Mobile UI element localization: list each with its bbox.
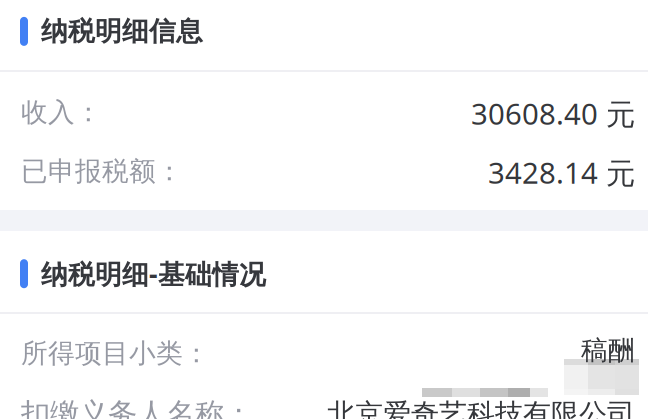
button[interactable]: 纳税明细信息 [0, 15, 648, 70]
staticText: 30608.40 元 [471, 94, 635, 133]
staticText: 已申报税额： [21, 155, 183, 188]
staticText: 收入： [21, 96, 102, 129]
staticText: 扣缴义务人名称： [21, 396, 253, 419]
button[interactable]: 所得项目小类： [0, 337, 648, 377]
staticText: 3428.14 元 [488, 153, 635, 192]
button[interactable]: 已申报税额： [0, 155, 648, 195]
staticText: 纳税明细-基础情况 [41, 256, 266, 291]
button[interactable]: 收入： [0, 96, 648, 136]
staticText: 稿酬 [581, 334, 635, 367]
staticText: 纳税明细信息 [41, 15, 203, 48]
button[interactable]: 扣缴义务人名称： [0, 396, 648, 419]
staticText: 北京爱奇艺科技有限公司 [327, 397, 635, 419]
button[interactable]: 纳税明细-基础情况 [0, 256, 648, 311]
staticText: 所得项目小类： [21, 337, 210, 370]
